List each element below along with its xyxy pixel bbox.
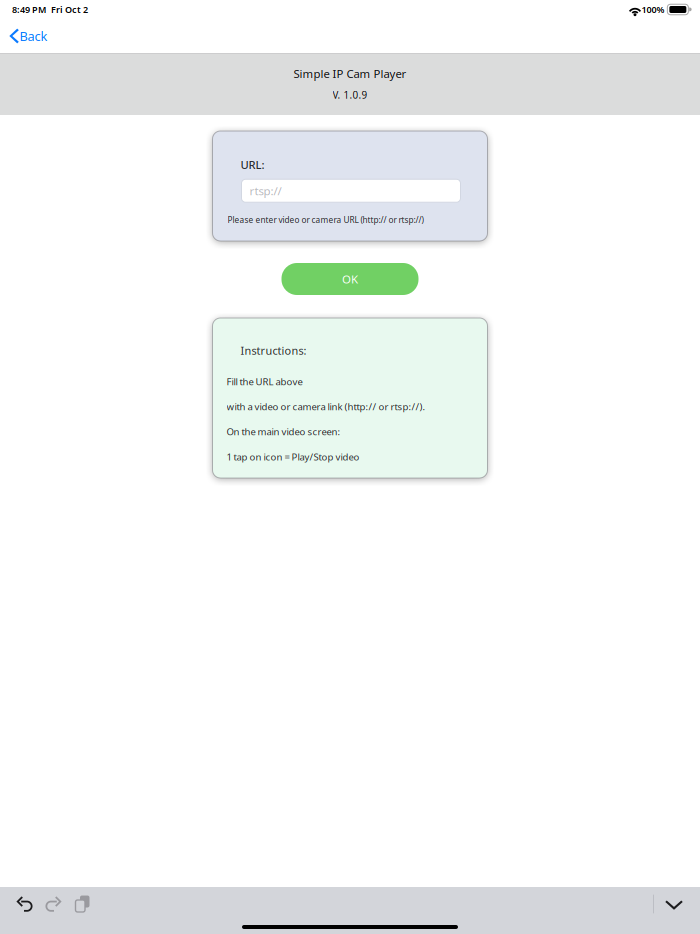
staticText: On the main video screen: xyxy=(226,425,340,438)
staticText: Back xyxy=(19,27,47,45)
button[interactable]: Back xyxy=(0,21,57,51)
button[interactable]: Paste xyxy=(68,890,97,918)
staticText: 100% xyxy=(641,3,664,16)
button[interactable]: rtsp:// xyxy=(212,172,460,202)
staticText: Instructions: xyxy=(240,343,306,358)
button[interactable]: Redo xyxy=(39,890,68,918)
staticText: Fri Oct 2 xyxy=(51,3,88,16)
staticText: rtsp:// xyxy=(249,183,281,198)
staticText: Please enter video or camera URL (http:/… xyxy=(227,214,423,226)
staticText: 1 tap on icon = Play/Stop video xyxy=(226,450,359,463)
staticText: with a video or camera link (http:// or … xyxy=(226,400,425,413)
staticText: V. 1.0.9 xyxy=(332,88,367,102)
button[interactable]: OK xyxy=(281,263,418,295)
staticText: URL: xyxy=(240,157,264,172)
staticText: Fill the URL above xyxy=(226,375,302,388)
staticText: 8:49 PM xyxy=(12,3,46,16)
button[interactable]: Hide keyboard xyxy=(654,890,694,918)
staticText: Simple IP Cam Player xyxy=(293,66,406,81)
button[interactable]: Undo xyxy=(10,890,39,918)
staticText: OK xyxy=(342,271,358,287)
